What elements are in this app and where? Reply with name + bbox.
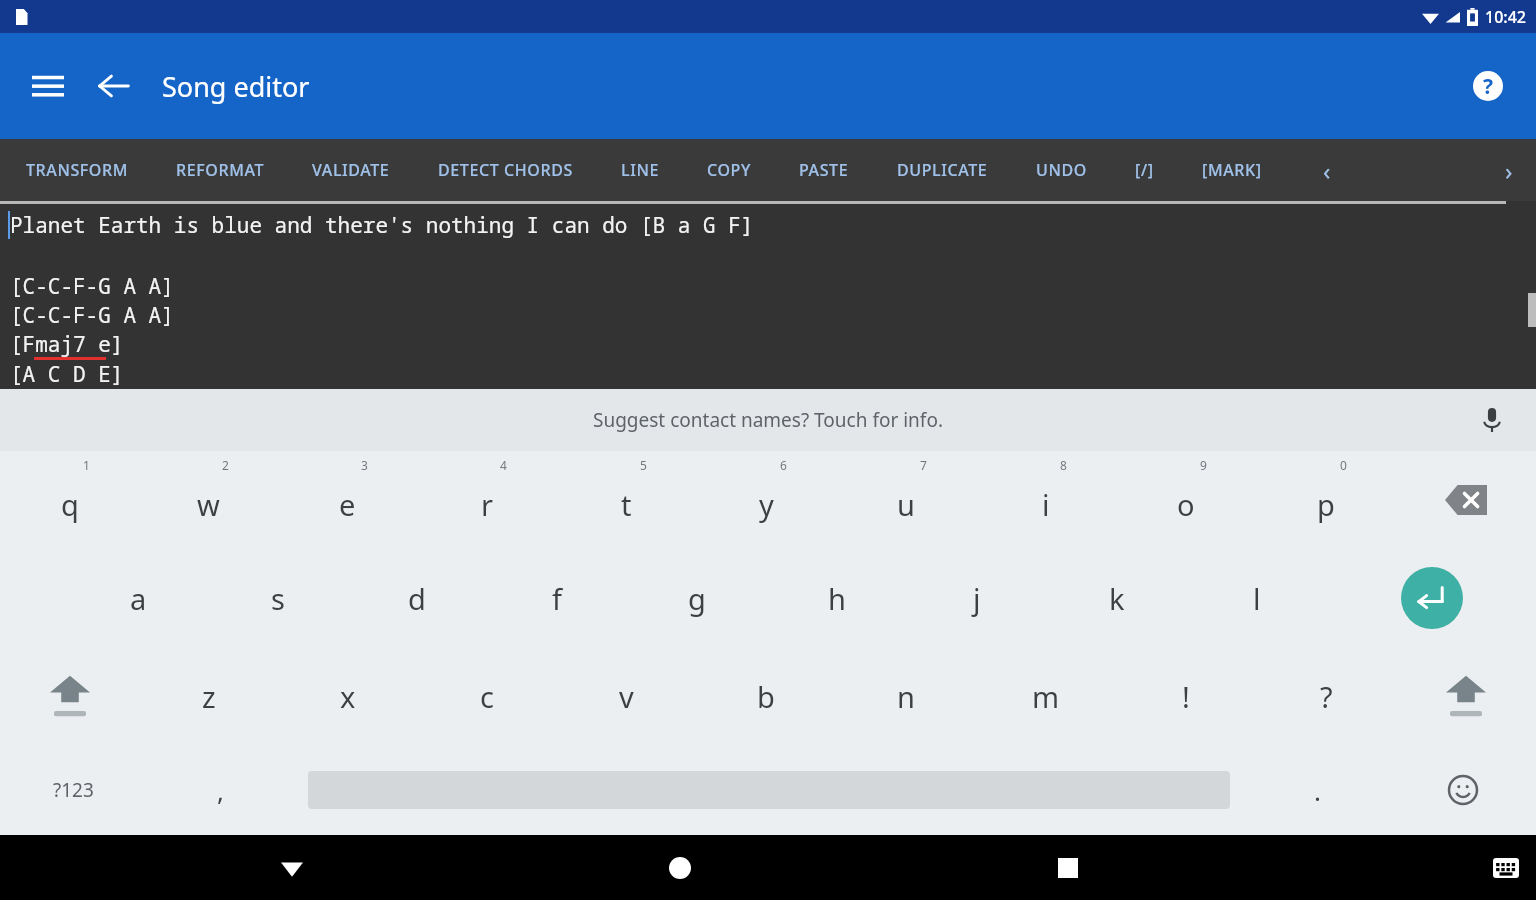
staticText: i: [1042, 485, 1050, 524]
button[interactable]: 1: [0, 451, 139, 549]
staticText: Planet Earth is blue and there's nothing…: [10, 211, 754, 240]
button[interactable]: Previous: [1310, 139, 1344, 201]
staticText: 10:42: [1485, 6, 1526, 28]
button[interactable]: Backspace: [1396, 451, 1536, 549]
staticText: y: [759, 485, 774, 524]
staticText: l: [1253, 579, 1261, 618]
button[interactable]: DETECT CHORDS: [438, 139, 573, 201]
button[interactable]: a: [69, 549, 208, 647]
staticText: PASTE: [799, 159, 849, 181]
button[interactable]: TRANSFORM: [26, 139, 128, 201]
button[interactable]: [293, 745, 1244, 835]
button[interactable]: h: [767, 549, 907, 647]
staticText: b: [757, 677, 775, 716]
staticText: ?: [1483, 72, 1494, 101]
staticText: TRANSFORM: [26, 159, 128, 181]
staticText: r: [481, 485, 493, 524]
button[interactable]: 4: [417, 451, 556, 549]
button[interactable]: Voice input: [1472, 400, 1512, 440]
button[interactable]: f: [487, 549, 627, 647]
button[interactable]: 7: [836, 451, 976, 549]
staticText: 5: [640, 457, 647, 473]
button[interactable]: Next: [1492, 139, 1526, 201]
button[interactable]: 2: [139, 451, 278, 549]
staticText: c: [480, 677, 494, 716]
staticText: ,: [217, 773, 224, 808]
staticText: 7: [920, 457, 927, 473]
button[interactable]: Enter: [1327, 549, 1536, 647]
button[interactable]: 8: [976, 451, 1116, 549]
staticText: REFORMAT: [176, 159, 264, 181]
button[interactable]: [/]: [1135, 139, 1154, 201]
button[interactable]: 5: [556, 451, 696, 549]
button[interactable]: c: [417, 647, 556, 745]
button[interactable]: Planet Earth is blue and there's nothing…: [0, 201, 1536, 389]
button[interactable]: 0: [1256, 451, 1396, 549]
button[interactable]: b: [696, 647, 836, 745]
staticText: w: [197, 485, 220, 524]
staticText: VALIDATE: [312, 159, 390, 181]
staticText: 9: [1200, 457, 1207, 473]
button[interactable]: Suggest contact names? Touch for info.: [0, 389, 1536, 451]
button[interactable]: g: [627, 549, 767, 647]
button[interactable]: [MARK]: [1202, 139, 1262, 201]
button[interactable]: Hide keyboard: [195, 835, 389, 900]
button[interactable]: ?123: [0, 745, 147, 835]
staticText: ?: [1320, 677, 1333, 716]
button[interactable]: Back: [88, 60, 140, 112]
staticText: ›: [1505, 154, 1513, 187]
staticText: [A C D E]: [10, 360, 124, 389]
staticText: o: [1177, 485, 1195, 524]
button[interactable]: 6: [696, 451, 836, 549]
button[interactable]: Menu: [22, 60, 74, 112]
button[interactable]: ,: [147, 745, 293, 835]
staticText: n: [897, 677, 915, 716]
staticText: ?123: [53, 777, 94, 803]
button[interactable]: d: [347, 549, 487, 647]
button[interactable]: Shift: [0, 647, 139, 745]
button[interactable]: COPY: [707, 139, 751, 201]
button[interactable]: Shift: [1396, 647, 1536, 745]
button[interactable]: s: [208, 549, 347, 647]
staticText: k: [1109, 579, 1125, 618]
button[interactable]: Help: [1462, 60, 1514, 112]
staticText: e: [339, 485, 356, 524]
button[interactable]: Home: [583, 835, 777, 900]
staticText: DETECT CHORDS: [438, 159, 573, 181]
button[interactable]: .: [1244, 745, 1390, 835]
button[interactable]: LINE: [621, 139, 659, 201]
button[interactable]: k: [1047, 549, 1187, 647]
staticText: u: [897, 485, 915, 524]
staticText: h: [828, 579, 846, 618]
button[interactable]: DUPLICATE: [897, 139, 988, 201]
staticText: a: [130, 579, 147, 618]
staticText: 4: [500, 457, 507, 473]
button[interactable]: z: [139, 647, 278, 745]
staticText: Song editor: [162, 68, 310, 105]
staticText: v: [619, 677, 634, 716]
button[interactable]: l: [1187, 549, 1327, 647]
button[interactable]: n: [836, 647, 976, 745]
button[interactable]: REFORMAT: [176, 139, 264, 201]
staticText: j: [973, 579, 981, 618]
button[interactable]: PASTE: [799, 139, 849, 201]
button[interactable]: Switch keyboard: [1476, 835, 1536, 900]
button[interactable]: v: [556, 647, 696, 745]
button[interactable]: UNDO: [1036, 139, 1087, 201]
staticText: !: [1182, 677, 1190, 716]
button[interactable]: 9: [1116, 451, 1256, 549]
button[interactable]: x: [278, 647, 417, 745]
button[interactable]: 3: [278, 451, 417, 549]
button[interactable]: VALIDATE: [312, 139, 390, 201]
staticText: p: [1317, 485, 1335, 524]
button[interactable]: m: [976, 647, 1116, 745]
button[interactable]: ?: [1256, 647, 1396, 745]
button[interactable]: j: [907, 549, 1047, 647]
button[interactable]: !: [1116, 647, 1256, 745]
staticText: f: [552, 579, 562, 618]
staticText: 0: [1340, 457, 1347, 473]
staticText: [/]: [1135, 159, 1154, 181]
staticText: 1: [83, 457, 90, 473]
button[interactable]: Emoji: [1390, 745, 1536, 835]
button[interactable]: Recents: [971, 835, 1165, 900]
